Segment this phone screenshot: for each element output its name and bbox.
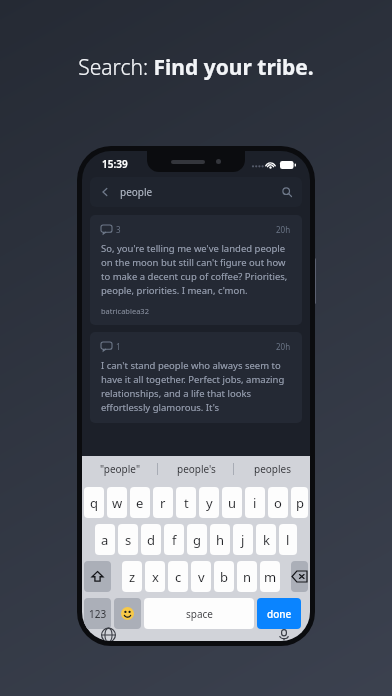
button[interactable]: v [191, 561, 211, 592]
staticText: a [101, 531, 109, 549]
staticText: So, you're telling me we've landed peopl… [101, 242, 291, 297]
button[interactable]: s [118, 524, 138, 555]
staticText: q [90, 494, 98, 512]
staticText: n [243, 568, 252, 586]
staticText: d [147, 531, 155, 549]
staticText: peoples [254, 462, 291, 476]
staticText: r [160, 494, 166, 512]
staticText: Search: Find your tribe. [78, 53, 314, 82]
button[interactable]: 1 [90, 332, 302, 423]
button[interactable]: Emoji [114, 598, 141, 629]
staticText: k [263, 531, 270, 549]
button[interactable]: done [257, 598, 301, 629]
button[interactable]: k [256, 524, 276, 555]
button[interactable]: h [210, 524, 230, 555]
button[interactable]: o [268, 487, 288, 518]
button[interactable]: f [164, 524, 184, 555]
staticText: people [120, 185, 153, 199]
button[interactable]: peoples [234, 456, 310, 482]
button[interactable]: w [107, 487, 127, 518]
staticText: 15:39 [102, 157, 128, 171]
button[interactable]: a [95, 524, 115, 555]
staticText: y [206, 494, 213, 512]
staticText: people's [177, 462, 216, 476]
staticText: f [172, 531, 177, 549]
button[interactable]: t [176, 487, 196, 518]
button[interactable]: j [233, 524, 253, 555]
button[interactable]: e [130, 487, 150, 518]
button[interactable]: y [199, 487, 219, 518]
staticText: l [286, 531, 290, 549]
button[interactable]: Dictation [274, 629, 294, 641]
staticText: u [228, 494, 237, 512]
staticText: s [125, 531, 132, 549]
button[interactable]: Change keyboard [98, 629, 118, 641]
staticText: o [274, 494, 282, 512]
button[interactable]: r [153, 487, 173, 518]
staticText: g [193, 531, 201, 549]
button[interactable]: q [84, 487, 104, 518]
staticText: 20h [276, 341, 291, 352]
button[interactable]: 123 [84, 598, 111, 629]
staticText: space [186, 607, 213, 621]
button[interactable]: i [245, 487, 265, 518]
staticText: batricablea32 [101, 306, 149, 316]
staticText: w [112, 494, 123, 512]
button[interactable]: p [291, 487, 308, 518]
button[interactable]: g [187, 524, 207, 555]
staticText: e [136, 494, 144, 512]
staticText: 1 [116, 341, 121, 352]
button[interactable]: z [122, 561, 142, 592]
button[interactable]: l [279, 524, 297, 555]
button[interactable]: 3 [90, 215, 302, 325]
staticText: t [184, 494, 189, 512]
staticText: z [129, 568, 136, 586]
staticText: p [296, 494, 304, 512]
button[interactable]: x [145, 561, 165, 592]
staticText: j [241, 531, 245, 549]
button[interactable]: space [144, 598, 254, 629]
button[interactable]: Back [90, 177, 302, 207]
button[interactable]: n [237, 561, 257, 592]
staticText: done [267, 607, 292, 621]
staticText: 3 [116, 224, 121, 235]
staticText: i [253, 494, 257, 512]
button[interactable]: b [214, 561, 234, 592]
button[interactable]: c [168, 561, 188, 592]
staticText: b [220, 568, 228, 586]
other: Search [282, 187, 292, 197]
button[interactable]: Shift [84, 561, 111, 592]
button[interactable]: m [260, 561, 280, 592]
staticText: m [264, 568, 277, 586]
button[interactable]: u [222, 487, 242, 518]
staticText: c [175, 568, 182, 586]
button[interactable]: Backspace [291, 561, 308, 592]
staticText: h [216, 531, 225, 549]
staticText: x [152, 568, 159, 586]
button[interactable]: people's [158, 456, 234, 482]
button[interactable]: d [141, 524, 161, 555]
staticText: 123 [89, 607, 107, 621]
staticText: v [198, 568, 205, 586]
staticText: I can't stand people who always seem to … [101, 359, 291, 414]
button[interactable]: "people" [82, 456, 158, 482]
staticText: "people" [100, 462, 140, 476]
staticText: 20h [276, 224, 291, 235]
other: Back [100, 187, 110, 197]
